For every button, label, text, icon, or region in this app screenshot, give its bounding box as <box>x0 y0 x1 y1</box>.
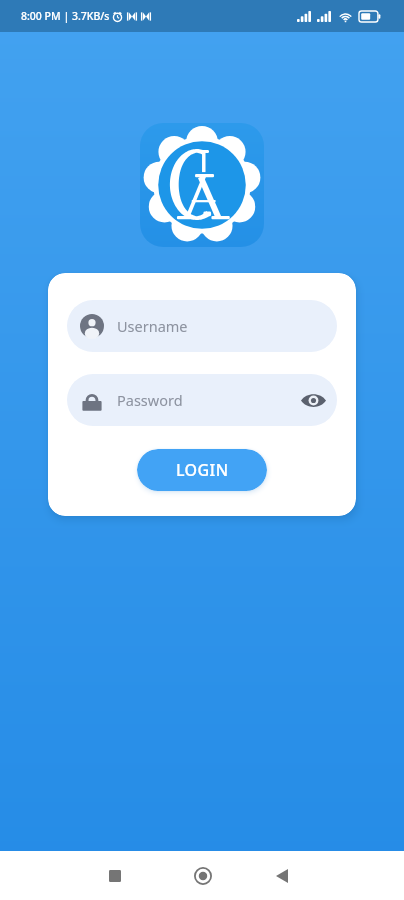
button[interactable]: Username <box>67 300 337 352</box>
button[interactable]: Recents <box>95 856 134 895</box>
button[interactable]: LOGIN <box>137 449 267 491</box>
staticText: LOGIN <box>176 459 229 481</box>
staticText: 8:00 PM | 3.7KB/s <box>21 9 110 23</box>
staticText: Username <box>117 316 188 336</box>
button[interactable]: Home <box>183 856 222 895</box>
button[interactable]: Back <box>262 856 301 895</box>
staticText: Password <box>117 390 183 410</box>
button[interactable]: Password <box>67 374 337 426</box>
